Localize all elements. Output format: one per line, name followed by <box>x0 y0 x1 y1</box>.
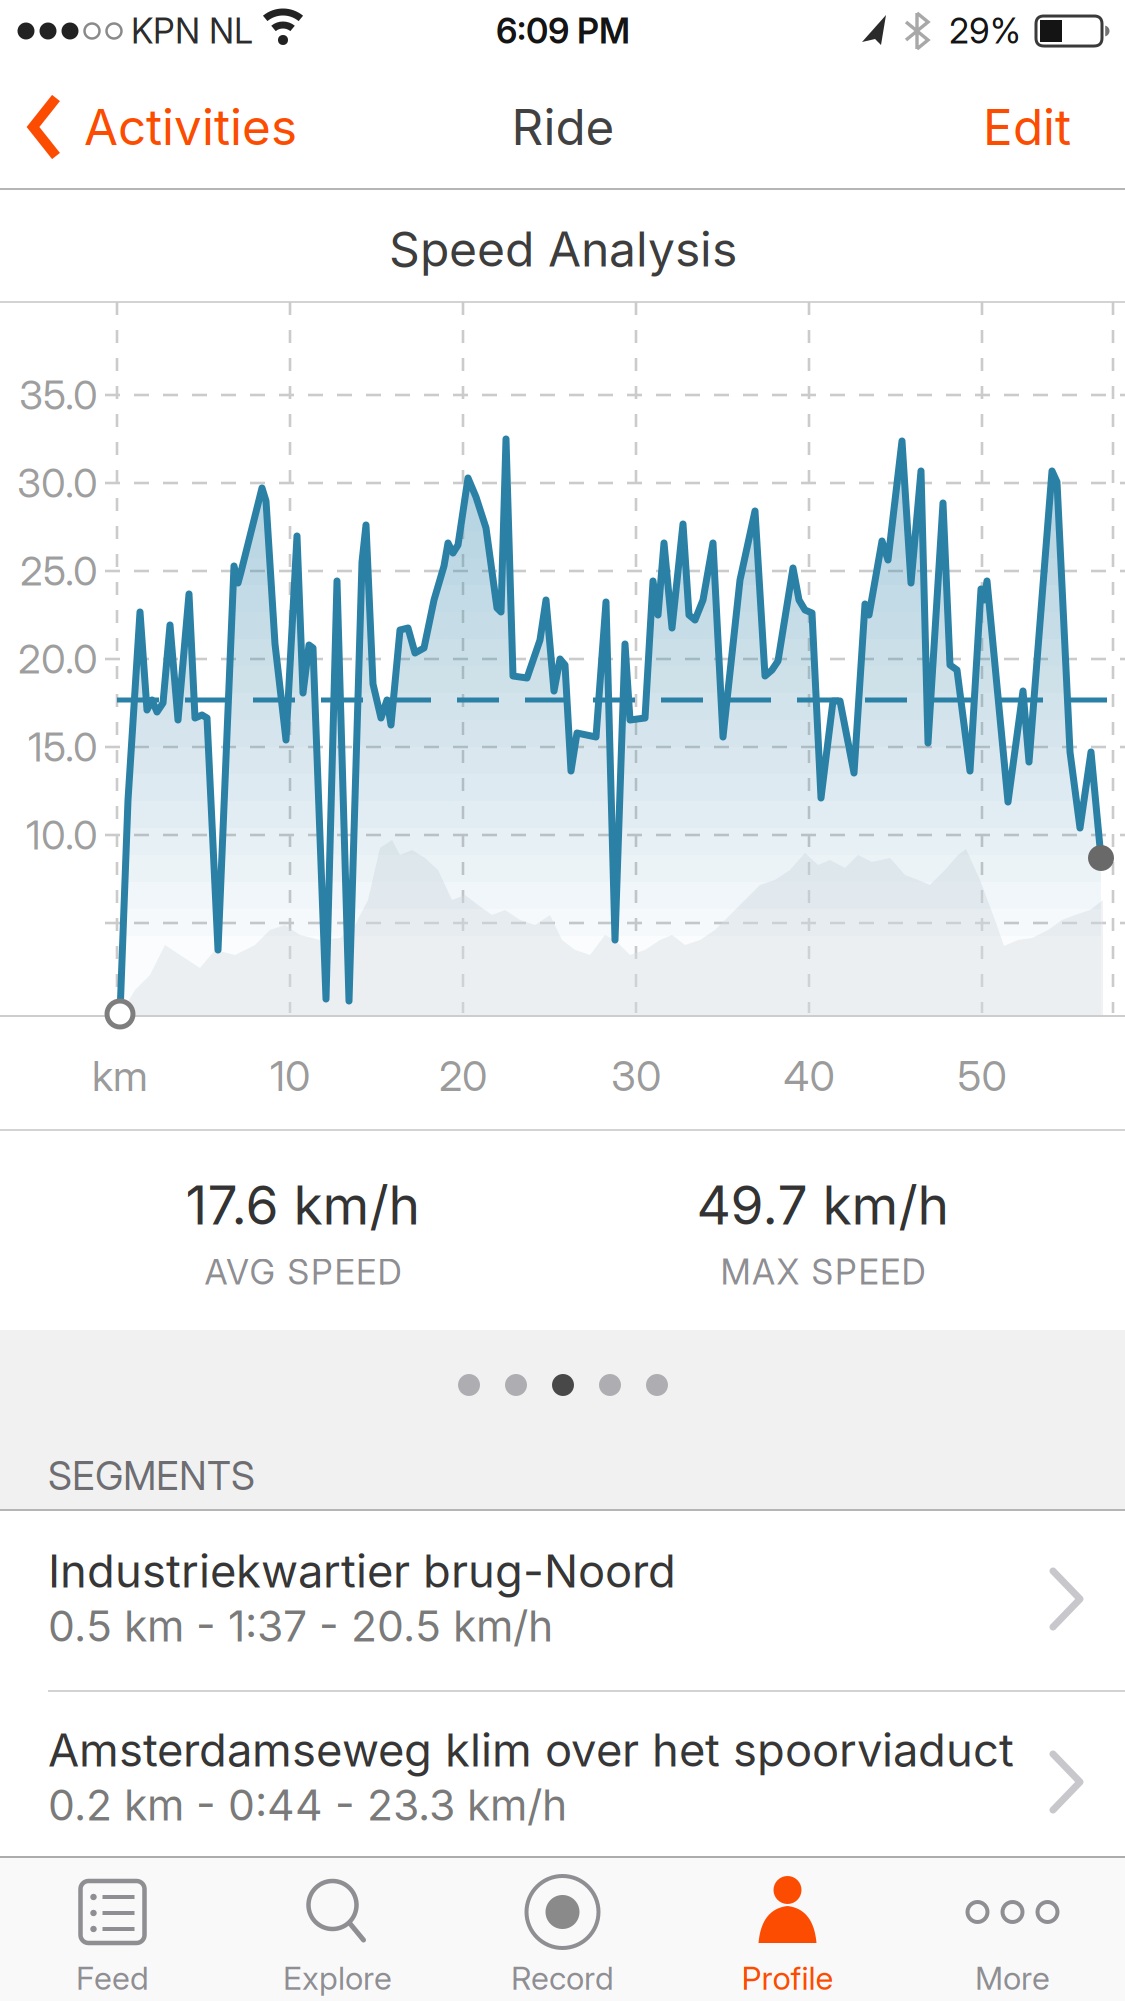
staticText: Speed Analysis <box>389 221 737 277</box>
staticText: 0.2 km - 0:44 - 23.3 km/h <box>48 1780 567 1830</box>
button[interactable]: Activities <box>30 96 297 158</box>
staticText: Amsterdamseweg klim over het spoorviaduc… <box>48 1723 1014 1777</box>
staticText: AVG SPEED <box>204 1252 401 1292</box>
button[interactable]: Page 3 of 5 <box>449 1365 677 1405</box>
staticText: 29% <box>949 11 1021 51</box>
staticText: Explore <box>283 1959 392 1997</box>
staticText: 10 <box>270 1052 310 1100</box>
staticText: 0.5 km - 1:37 - 20.5 km/h <box>48 1601 553 1651</box>
staticText: 50 <box>957 1052 1006 1100</box>
button[interactable]: Profile <box>675 1857 900 2001</box>
staticText: Ride <box>511 98 614 156</box>
staticText: 15.0 <box>28 723 98 771</box>
staticText: 17.6 km/h <box>185 1173 420 1236</box>
button[interactable]: More <box>900 1857 1125 2001</box>
button[interactable]: Record <box>450 1857 675 2001</box>
staticText: MAX SPEED <box>720 1252 925 1292</box>
staticText: 30.0 <box>17 459 98 507</box>
staticText: Profile <box>741 1959 833 1997</box>
button[interactable]: Amsterdamseweg klim over het spoorviaduc… <box>0 1692 1125 1855</box>
staticText: 40 <box>783 1052 834 1100</box>
staticText: 20 <box>439 1052 487 1100</box>
staticText: Activities <box>84 98 297 156</box>
staticText: SEGMENTS <box>48 1453 255 1499</box>
button[interactable]: Feed <box>0 1857 225 2001</box>
staticText: km <box>92 1052 148 1100</box>
staticText: 25.0 <box>20 547 98 595</box>
staticText: 49.7 km/h <box>696 1173 949 1236</box>
staticText: 30 <box>611 1052 661 1100</box>
button[interactable]: Industriekwartier brug-Noord <box>0 1511 1125 1690</box>
button[interactable]: Edit <box>983 98 1071 156</box>
staticText: Feed <box>76 1959 149 1997</box>
staticText: 35.0 <box>19 371 98 419</box>
staticText: KPN NL <box>131 11 253 51</box>
button[interactable]: Explore <box>225 1857 450 2001</box>
staticText: 6:09 PM <box>496 11 630 51</box>
staticText: More <box>975 1959 1050 1997</box>
staticText: Record <box>511 1959 614 1997</box>
staticText: 20.0 <box>18 635 98 683</box>
staticText: Industriekwartier brug-Noord <box>48 1544 676 1598</box>
staticText: Edit <box>983 98 1071 156</box>
staticText: 10.0 <box>26 811 98 859</box>
